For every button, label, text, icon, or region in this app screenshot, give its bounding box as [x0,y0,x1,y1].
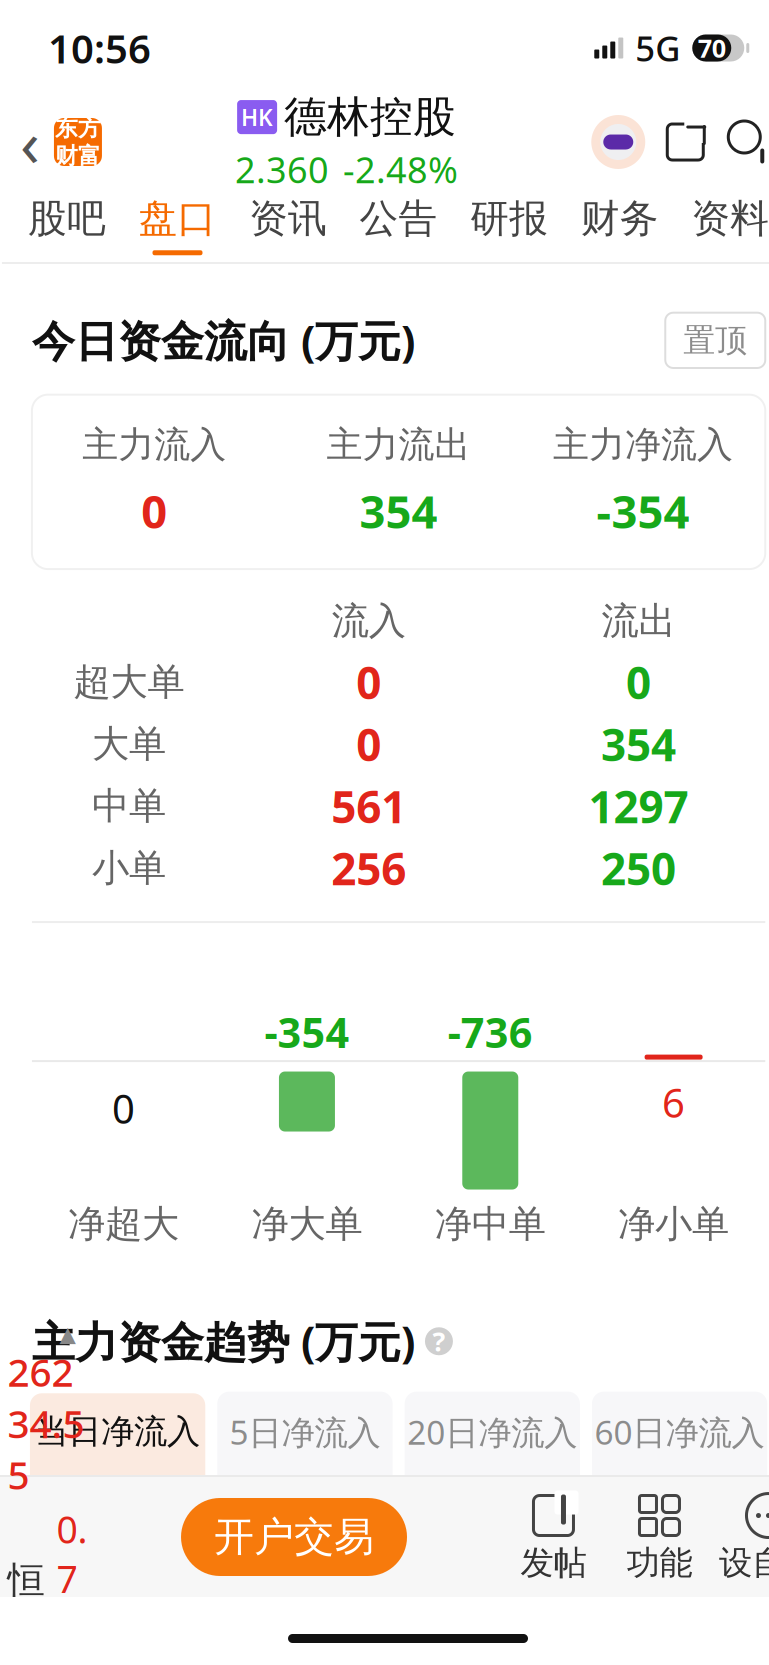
button[interactable]: 功能 [606,1490,712,1583]
staticText: 256 [331,839,406,897]
button[interactable]: 资讯 [249,188,327,262]
button[interactable]: 当日净流入 [30,1393,205,1537]
staticText: 0 [141,481,167,541]
staticText: 5G [635,25,680,71]
staticText: 10:56 [48,21,151,74]
staticText: HK [241,102,273,132]
staticText: 1297 [588,777,688,835]
staticText: 0 [356,715,381,773]
staticText: 财富 [55,142,101,170]
staticText: 5日净流入 [229,1410,380,1454]
button[interactable]: 返回 [2,99,102,184]
staticText: 净小单 [618,1201,729,1247]
button[interactable]: 置顶 [665,313,765,368]
button[interactable]: 20日净流入 [405,1392,580,1538]
staticText: 0 [626,653,651,711]
staticText: 0 [356,653,381,711]
staticText: 东方 [55,114,101,142]
staticText: ? [432,1324,445,1359]
staticText: 股吧 [28,195,106,242]
staticText: 6 [662,1076,685,1129]
staticText: 0.77% [57,1504,88,1665]
staticText: 619 [269,1464,341,1521]
staticText: -2.48% [343,145,458,193]
button[interactable]: 发帖 [500,1490,606,1583]
staticText: 26234.55 [8,1346,85,1500]
staticText: 中单 [92,783,166,829]
staticText: 354 [601,715,676,773]
button[interactable]: ▲ [0,1322,88,1665]
staticText: 净中单 [435,1201,546,1247]
button[interactable]: 开户交易 [181,1498,407,1576]
staticText: 70 [698,31,726,65]
staticText: 小单 [92,845,166,891]
button[interactable]: 分享 [661,118,709,166]
staticText: ▲ [60,1322,76,1346]
staticText: -354 [264,1005,349,1059]
staticText: 财务 [581,195,659,242]
staticText: 主力流入 [82,423,226,467]
button[interactable]: 公告 [360,188,438,262]
staticText: 公告 [360,195,438,242]
staticText: 561 [331,777,406,835]
staticText: 大单 [92,721,166,767]
button[interactable]: 财务 [581,188,659,262]
staticText: ‹ [20,99,40,184]
button[interactable]: 5日净流入 [217,1392,393,1538]
staticText: 354 [360,481,438,541]
staticText: 净超大 [68,1201,179,1247]
staticText: 今日资金流向 (万元) [32,312,415,369]
staticText: 当日净流入 [35,1411,200,1452]
staticText: 研报 [470,195,548,242]
staticText: -5583 [437,1464,547,1521]
button[interactable]: AI助手 [591,115,645,169]
button[interactable]: 资料 [691,188,769,262]
staticText: 流入 [332,598,406,644]
staticText: 开户交易 [214,1512,374,1561]
staticText: -354 [75,1462,161,1519]
button[interactable]: 研报 [470,188,548,262]
staticText: 主力流出 [327,423,471,467]
staticText: 德林控股 [284,91,456,143]
staticText: 20日净流入 [407,1410,577,1454]
staticText: -17638 [613,1464,747,1521]
staticText: 恒生 [8,1557,45,1649]
button[interactable]: 设自选 [712,1490,769,1583]
button[interactable]: 股吧 [28,188,106,262]
staticText: 功能 [626,1542,692,1583]
staticText: 资讯 [249,195,327,242]
button[interactable]: 60日净流入 [592,1392,767,1538]
staticText: 置顶 [683,321,747,360]
staticText: 盘口 [138,195,216,242]
staticText: 0 [112,1082,135,1135]
button[interactable]: 盘口 [138,188,216,262]
staticText: 60日净流入 [595,1410,765,1454]
staticText: -736 [448,1005,533,1059]
staticText: 超大单 [73,659,184,705]
staticText: 发帖 [520,1542,586,1583]
button[interactable]: 搜索 [725,118,769,166]
button[interactable]: 说明 [425,1327,453,1355]
staticText: -354 [597,481,690,541]
staticText: 2.360 [235,145,329,193]
staticText: 设自选 [719,1542,769,1583]
staticText: 主力资金趋势 (万元) [32,1313,415,1370]
staticText: 主力净流入 [553,423,733,467]
staticText: 流出 [601,598,675,644]
staticText: 资料 [691,195,769,242]
staticText: 净大单 [251,1201,362,1247]
staticText: 250 [601,839,676,897]
